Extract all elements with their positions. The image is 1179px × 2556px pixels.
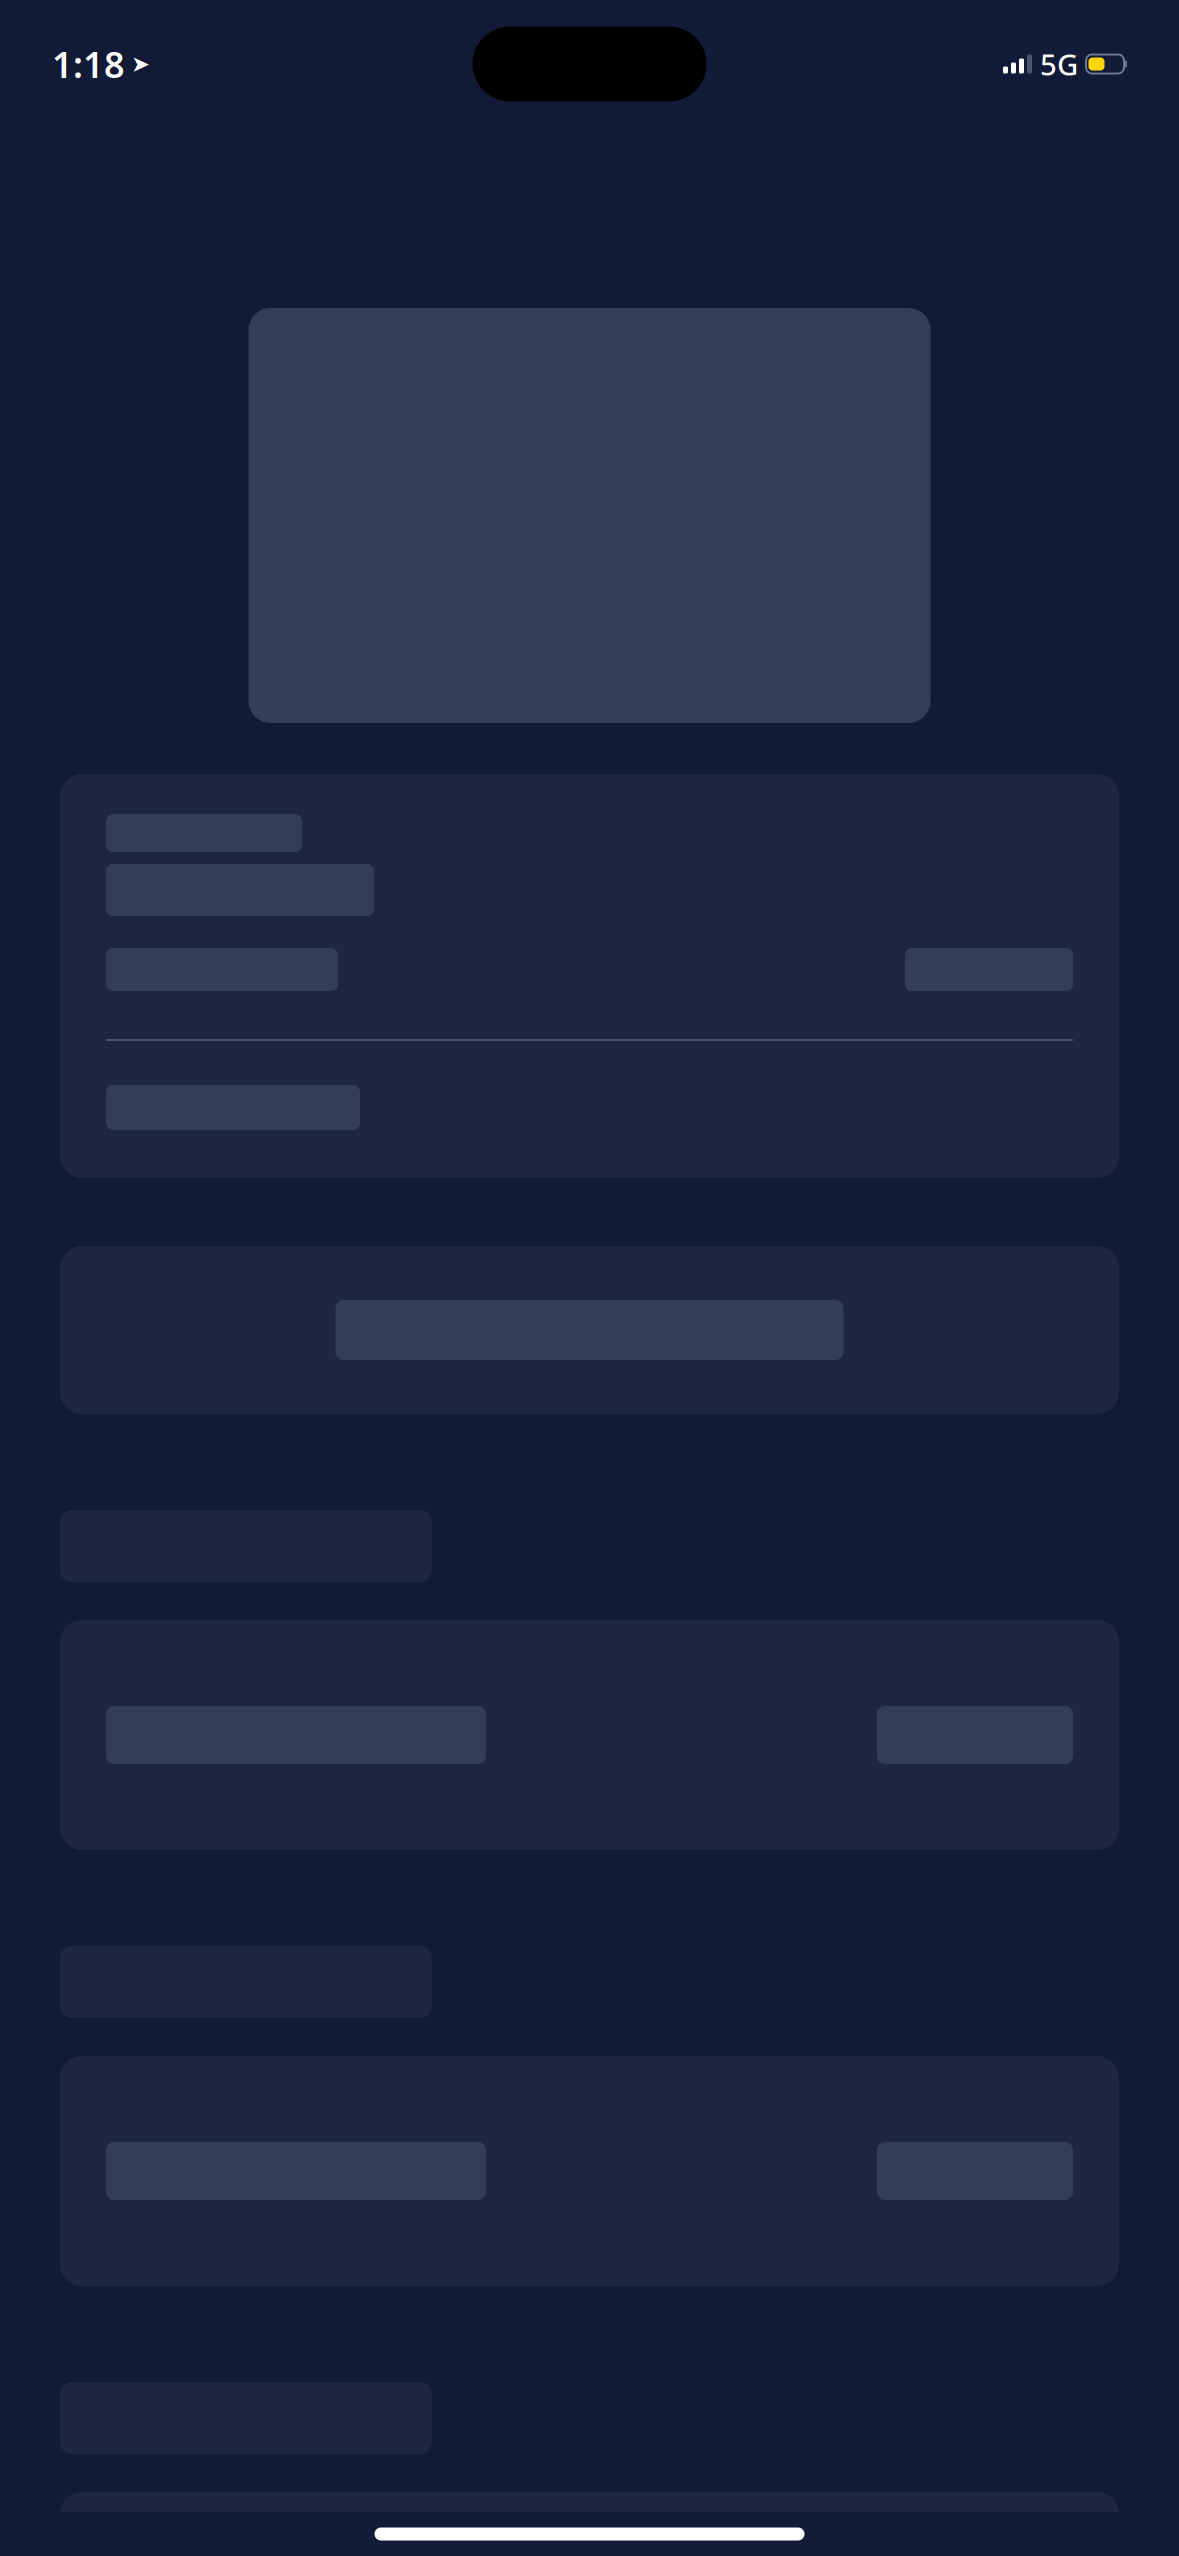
button[interactable] [60,1620,1119,1850]
button[interactable] [60,774,1119,1178]
button[interactable] [60,2056,1119,2286]
button[interactable] [60,1246,1119,1414]
staticText: 5G [1040,44,1078,83]
button[interactable] [60,2492,1119,2556]
staticText: 1:18 [52,40,125,88]
staticText: ➤ [131,51,150,77]
